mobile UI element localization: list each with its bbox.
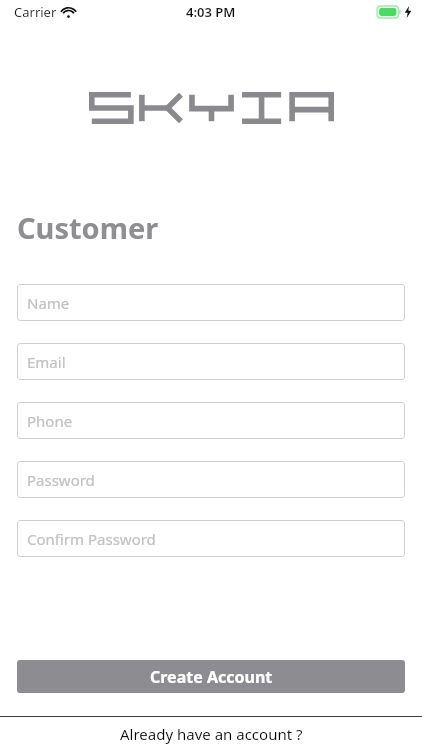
button[interactable]: Already have an account ? (0, 717, 422, 750)
staticText: 4:03 PM (186, 3, 236, 21)
staticText: Phone (27, 411, 73, 431)
staticText: Confirm Password (27, 529, 156, 549)
button[interactable]: Create Account (17, 660, 405, 693)
button[interactable]: Confirm Password (17, 520, 405, 557)
staticText: Carrier (14, 3, 57, 21)
staticText: Already have an account ? (120, 724, 303, 744)
staticText: Password (27, 470, 95, 490)
button[interactable]: Email (17, 343, 405, 380)
button[interactable]: Password (17, 461, 405, 498)
staticText: Email (27, 352, 66, 372)
button[interactable]: Name (17, 284, 405, 321)
other: SKYIA logo (89, 92, 334, 124)
staticText: Name (27, 293, 70, 313)
button[interactable]: Phone (17, 402, 405, 439)
staticText: Customer (17, 208, 159, 247)
staticText: Create Account (150, 666, 273, 688)
